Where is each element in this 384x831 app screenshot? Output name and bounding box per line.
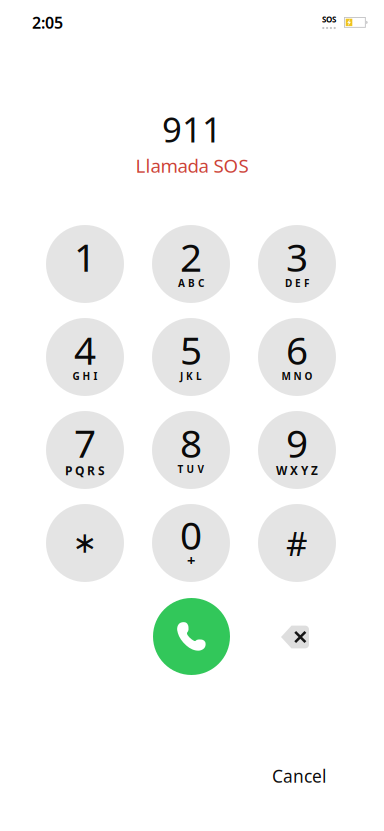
staticText: 7: [74, 417, 96, 468]
staticText: T U V: [177, 462, 204, 476]
button[interactable]: Cancel: [264, 762, 334, 790]
staticText: M N O: [281, 369, 312, 383]
staticText: 2: [180, 231, 202, 282]
staticText: 4: [74, 324, 96, 375]
staticText: D E F: [285, 276, 309, 290]
staticText: 5: [180, 324, 202, 375]
staticText: SOS: [322, 14, 336, 25]
button[interactable]: 3: [258, 225, 336, 303]
staticText: 0: [180, 509, 202, 560]
staticText: J K L: [180, 369, 202, 383]
button[interactable]: 5: [152, 318, 230, 396]
staticText: 3: [286, 231, 308, 282]
staticText: 1: [74, 231, 96, 282]
staticText: #: [286, 521, 308, 565]
button[interactable]: Call: [153, 598, 230, 675]
staticText: 2:05: [32, 12, 63, 33]
staticText: Llamada SOS: [135, 153, 248, 178]
staticText: Cancel: [272, 764, 326, 787]
staticText: W X Y Z: [276, 462, 318, 478]
button[interactable]: ∗: [46, 504, 124, 582]
button[interactable]: Delete: [265, 607, 325, 667]
staticText: A B C: [178, 276, 204, 290]
button[interactable]: 1: [46, 225, 124, 303]
staticText: 6: [286, 324, 308, 375]
button[interactable]: #: [258, 504, 336, 582]
staticText: G H I: [72, 369, 97, 383]
staticText: ∗: [72, 526, 97, 559]
button[interactable]: 2: [152, 225, 230, 303]
staticText: 9: [286, 417, 308, 468]
staticText: 911: [162, 106, 222, 152]
staticText: +: [187, 550, 195, 570]
button[interactable]: 8: [152, 411, 230, 489]
button[interactable]: 7: [46, 411, 124, 489]
staticText: P Q R S: [65, 462, 105, 479]
button[interactable]: 0: [152, 504, 230, 582]
button[interactable]: 9: [258, 411, 336, 489]
button[interactable]: 6: [258, 318, 336, 396]
button[interactable]: 4: [46, 318, 124, 396]
staticText: 8: [180, 417, 202, 468]
